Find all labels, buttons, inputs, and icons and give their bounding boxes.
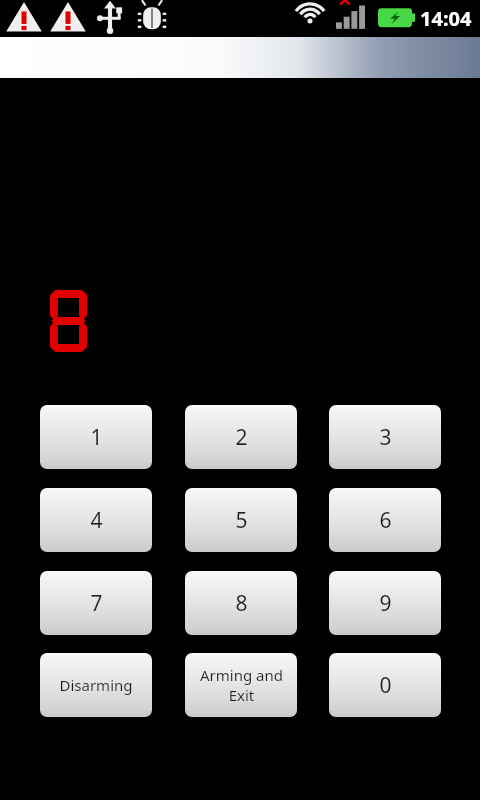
staticText: 4 (90, 506, 103, 535)
staticText: 2 (235, 423, 248, 452)
button[interactable]: 1 (40, 405, 152, 469)
staticText: 8 (235, 589, 248, 618)
staticText: 7 (90, 589, 103, 618)
staticText: 0 (379, 671, 392, 700)
button[interactable]: 2 (185, 405, 297, 469)
staticText: 9 (379, 589, 392, 618)
staticText: 14:04 (420, 5, 472, 32)
button[interactable]: 4 (40, 488, 152, 552)
staticText: 1 (90, 423, 103, 452)
button[interactable]: Arming and Exit (185, 653, 297, 717)
button[interactable]: Disarming (40, 653, 152, 717)
button[interactable]: 7 (40, 571, 152, 635)
staticText: 3 (379, 423, 392, 452)
button[interactable]: 6 (329, 488, 441, 552)
button[interactable]: 8 (185, 571, 297, 635)
staticText: Disarming (59, 675, 133, 695)
button[interactable]: 3 (329, 405, 441, 469)
staticText: 5 (235, 506, 248, 535)
staticText: 6 (379, 506, 392, 535)
button[interactable]: 5 (185, 488, 297, 552)
button[interactable]: 9 (329, 571, 441, 635)
button[interactable]: 0 (329, 653, 441, 717)
staticText: Arming and Exit (200, 665, 283, 705)
